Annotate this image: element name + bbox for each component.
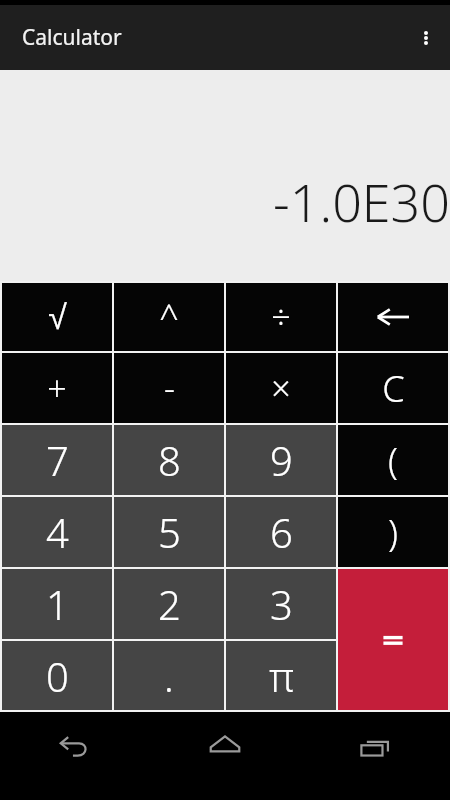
staticText: ( xyxy=(388,436,398,485)
button[interactable]: 9 xyxy=(226,425,336,495)
staticText: 3 xyxy=(270,577,293,631)
button[interactable]: ) xyxy=(338,497,448,567)
staticText: + xyxy=(47,365,67,411)
button[interactable]: × xyxy=(226,353,336,423)
staticText: 9 xyxy=(270,433,293,487)
button[interactable]: ÷ xyxy=(226,283,336,351)
button[interactable]: √ xyxy=(2,283,112,351)
button[interactable]: 2 xyxy=(114,569,224,639)
button[interactable]: . xyxy=(114,641,224,710)
button[interactable]: 1 xyxy=(2,569,112,639)
staticText: 1 xyxy=(46,577,69,631)
button[interactable]: 3 xyxy=(226,569,336,639)
button[interactable]: + xyxy=(2,353,112,423)
button[interactable]: 7 xyxy=(2,425,112,495)
staticText: C xyxy=(382,364,405,413)
button[interactable]: π xyxy=(226,641,336,710)
button[interactable]: 0 xyxy=(2,641,112,710)
staticText: √ xyxy=(48,298,67,336)
button[interactable] xyxy=(338,569,448,710)
staticText: ) xyxy=(388,508,398,557)
button[interactable]: Back xyxy=(0,712,150,780)
staticText: 2 xyxy=(158,577,181,631)
staticText: 5 xyxy=(158,505,181,559)
staticText: π xyxy=(269,649,294,703)
staticText: 8 xyxy=(158,433,181,487)
staticText: ÷ xyxy=(271,294,291,340)
staticText: . xyxy=(164,649,174,703)
button[interactable]: 5 xyxy=(114,497,224,567)
button[interactable]: 6 xyxy=(226,497,336,567)
staticText: ^ xyxy=(159,294,179,340)
button[interactable]: More options xyxy=(402,5,450,70)
staticText: - xyxy=(164,365,175,411)
button[interactable]: - xyxy=(114,353,224,423)
button[interactable]: C xyxy=(338,353,448,423)
staticText: Calculator xyxy=(22,23,122,52)
staticText: 0 xyxy=(46,649,69,703)
button[interactable]: ^ xyxy=(114,283,224,351)
staticText: -1.0E30 xyxy=(273,166,450,237)
staticText: 7 xyxy=(46,433,69,487)
staticText: 6 xyxy=(270,505,293,559)
button[interactable]: Recent apps xyxy=(300,712,450,780)
button[interactable]: Home xyxy=(150,712,300,780)
button[interactable]: 8 xyxy=(114,425,224,495)
staticText: × xyxy=(271,365,291,411)
button[interactable]: 4 xyxy=(2,497,112,567)
button[interactable]: Backspace xyxy=(338,283,448,351)
button[interactable]: ( xyxy=(338,425,448,495)
staticText: 4 xyxy=(46,505,69,559)
